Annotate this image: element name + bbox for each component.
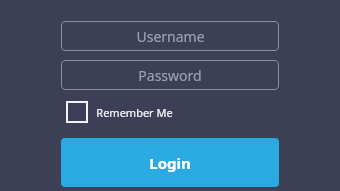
staticText: Password [138, 66, 202, 85]
button[interactable]: Login [61, 138, 279, 187]
button[interactable]: Username [61, 21, 279, 51]
staticText: Username [136, 27, 205, 46]
staticText: Remember Me [96, 105, 173, 120]
button[interactable]: Password [61, 60, 279, 90]
button[interactable]: Remember Me [61, 101, 173, 123]
staticText: Login [149, 153, 191, 173]
